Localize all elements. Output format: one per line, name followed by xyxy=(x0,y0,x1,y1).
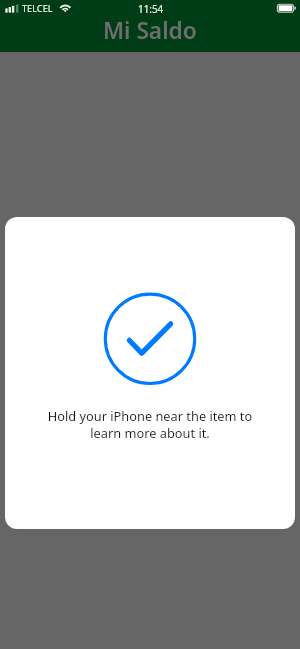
staticText: 11:54 xyxy=(138,2,164,15)
staticText: Hold your iPhone near the item to learn … xyxy=(5,407,295,442)
staticText: Mi Saldo xyxy=(103,15,197,46)
other: Success check xyxy=(105,293,195,383)
button[interactable]: Success check xyxy=(5,217,295,529)
staticText: TELCEL xyxy=(22,2,53,15)
button[interactable]: Mi Saldo xyxy=(103,15,197,46)
button[interactable]: Dismiss xyxy=(0,0,300,649)
